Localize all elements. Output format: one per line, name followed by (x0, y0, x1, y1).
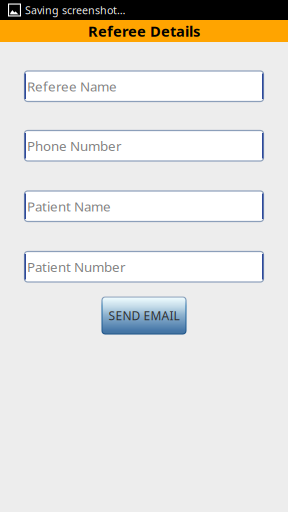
staticText: Patient Number (27, 258, 126, 276)
staticText: SEND EMAIL (108, 307, 179, 323)
staticText: Saving screenshot… (25, 3, 125, 17)
staticText: Phone Number (27, 137, 122, 155)
button[interactable]: Phone Number (24, 130, 263, 161)
button[interactable]: Referee Name (24, 71, 263, 101)
staticText: Referee Details (88, 21, 200, 41)
button[interactable]: Patient Name (24, 191, 263, 221)
button[interactable]: Patient Number (24, 251, 263, 282)
staticText: Referee Name (27, 77, 117, 95)
staticText: Patient Name (27, 197, 111, 215)
button[interactable]: SEND EMAIL (101, 296, 186, 334)
